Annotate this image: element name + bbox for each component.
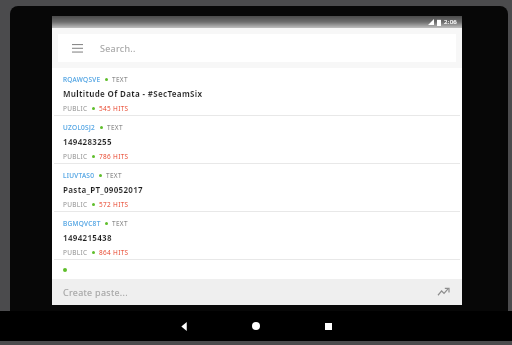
staticText: LIUVTAS0 — [63, 171, 95, 180]
button[interactable]: BGMQVC8T — [52, 212, 462, 259]
staticText: PUBLIC — [63, 152, 88, 161]
staticText: Multitude Of Data - #SecTeamSix — [63, 88, 203, 99]
staticText: Pasta_PT_09052017 — [63, 184, 143, 195]
button[interactable]: RQAWQSVE — [52, 68, 462, 115]
staticText: Create paste... — [63, 286, 128, 298]
staticText: UZOL0SJ2 — [63, 123, 96, 132]
staticText: TEXT — [112, 75, 128, 84]
staticText: TEXT — [112, 219, 128, 228]
button[interactable]: Back — [148, 311, 220, 341]
staticText: TEXT — [106, 171, 122, 180]
staticText: 864 HITS — [99, 248, 129, 257]
staticText: 545 HITS — [99, 104, 129, 113]
button[interactable]: Open navigation menu — [68, 39, 86, 57]
button[interactable]: Create paste... — [52, 279, 462, 305]
staticText: RQAWQSVE — [63, 75, 101, 84]
button[interactable]: Home — [220, 311, 292, 341]
staticText: 786 HITS — [99, 152, 129, 161]
staticText: BGMQVC8T — [63, 219, 101, 228]
button[interactable]: Trending pastes — [435, 284, 451, 300]
button[interactable]: UZOL0SJ2 — [52, 116, 462, 163]
staticText: 2:06 — [444, 18, 458, 26]
staticText: PUBLIC — [63, 104, 88, 113]
staticText: PUBLIC — [63, 200, 88, 209]
button[interactable]: Recent apps — [292, 311, 364, 341]
staticText: 572 HITS — [99, 200, 129, 209]
button[interactable]: LIUVTAS0 — [52, 164, 462, 211]
staticText: Search.. — [100, 42, 136, 54]
staticText: 1494283255 — [63, 136, 112, 147]
staticText: TEXT — [107, 123, 123, 132]
staticText: PUBLIC — [63, 248, 88, 257]
staticText: 1494215438 — [63, 232, 112, 243]
button[interactable]: Open navigation menu — [58, 34, 456, 62]
